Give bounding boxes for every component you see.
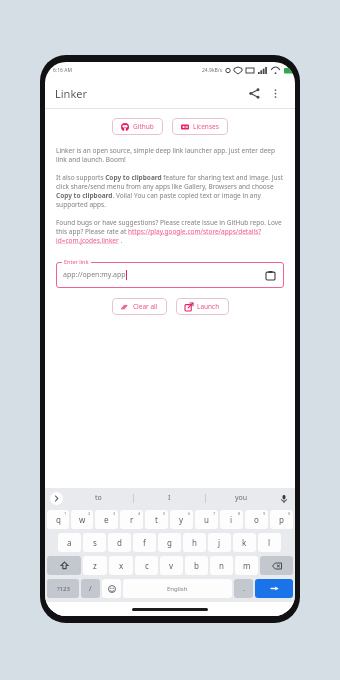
button[interactable]: Paste from clipboard <box>263 268 277 282</box>
staticText: ?123 <box>57 585 70 593</box>
staticText: q <box>56 514 61 525</box>
button[interactable]: d <box>108 533 131 552</box>
button[interactable]: Enter <box>255 579 293 598</box>
button[interactable]: Licenses <box>172 118 228 135</box>
staticText: app://open:my.app <box>63 270 126 280</box>
staticText: t <box>155 514 158 525</box>
button[interactable]: z <box>83 556 107 575</box>
staticText: e <box>104 514 109 525</box>
button[interactable]: e <box>95 510 118 529</box>
staticText: i <box>230 514 233 525</box>
button[interactable]: Expand toolbar <box>50 492 63 505</box>
button[interactable]: I <box>134 493 205 503</box>
button[interactable]: j <box>208 533 231 552</box>
staticText: f <box>143 537 146 548</box>
staticText: p <box>279 514 284 525</box>
button[interactable]: Emoji <box>102 579 121 598</box>
staticText: Launch <box>197 302 220 311</box>
button[interactable]: s <box>83 533 106 552</box>
staticText: j <box>218 537 221 548</box>
staticText: 9 <box>263 511 266 516</box>
button[interactable]: v <box>160 556 183 575</box>
staticText: y <box>179 514 184 525</box>
button[interactable]: m <box>235 556 258 575</box>
button[interactable]: y <box>170 510 193 529</box>
staticText: 6 <box>188 511 191 516</box>
staticText: r <box>130 514 134 525</box>
button[interactable]: l <box>258 533 281 552</box>
staticText: I <box>168 493 171 503</box>
button[interactable]: to <box>63 493 133 503</box>
staticText: 4 <box>138 511 141 516</box>
button[interactable]: More options <box>265 83 285 103</box>
staticText: Linker <box>55 86 88 101</box>
staticText: z <box>93 560 97 571</box>
button[interactable]: Slash <box>81 579 100 598</box>
staticText: w <box>79 514 86 525</box>
button[interactable]: k <box>233 533 256 552</box>
button[interactable]: Period <box>234 579 253 598</box>
staticText: o <box>254 514 259 525</box>
staticText: 6:16 AM <box>53 67 72 74</box>
staticText: 7 <box>213 511 216 516</box>
staticText: Github <box>133 122 154 131</box>
staticText: English <box>167 585 188 593</box>
staticText: Linker is an open source, simple deep li… <box>56 146 284 164</box>
button[interactable]: p <box>270 510 293 529</box>
button[interactable]: Shift <box>47 556 81 575</box>
button[interactable]: o <box>245 510 268 529</box>
staticText: x <box>119 560 124 571</box>
button[interactable]: h <box>183 533 206 552</box>
staticText: m <box>243 560 251 571</box>
button[interactable]: Symbols <box>47 579 79 598</box>
button[interactable]: a <box>58 533 81 552</box>
staticText: Clear all <box>133 302 158 311</box>
staticText: h <box>192 537 197 548</box>
button[interactable]: r <box>120 510 143 529</box>
staticText: 5 <box>163 511 166 516</box>
button[interactable]: Github <box>112 118 163 135</box>
staticText: c <box>145 560 149 571</box>
staticText: It also supports Copy to clipboard featu… <box>56 173 284 209</box>
staticText: u <box>204 514 209 525</box>
staticText: s <box>93 537 97 548</box>
staticText: l <box>268 537 271 548</box>
button[interactable]: g <box>158 533 181 552</box>
staticText: Licenses <box>193 122 219 131</box>
staticText: to <box>95 493 102 503</box>
button[interactable]: Voice input <box>277 492 290 505</box>
button[interactable]: Launch <box>176 298 229 315</box>
staticText: k <box>242 537 247 548</box>
staticText: 0 <box>288 511 291 516</box>
button[interactable]: you <box>206 493 277 503</box>
button[interactable]: u <box>195 510 218 529</box>
button[interactable]: q <box>47 510 69 529</box>
button[interactable]: app://open:my.app <box>56 262 284 288</box>
staticText: d <box>117 537 122 548</box>
button[interactable]: Share <box>243 82 265 104</box>
staticText: 2 <box>88 511 91 516</box>
button[interactable]: c <box>135 556 158 575</box>
staticText: / <box>89 584 92 594</box>
button[interactable]: w <box>71 510 93 529</box>
staticText: g <box>167 537 172 548</box>
button[interactable]: i <box>220 510 243 529</box>
staticText: 1 <box>64 511 67 516</box>
staticText: Enter link <box>64 258 89 265</box>
button[interactable]: b <box>185 556 208 575</box>
staticText: a <box>67 537 72 548</box>
button[interactable]: x <box>109 556 133 575</box>
staticText: . <box>243 584 245 594</box>
button[interactable]: f <box>133 533 156 552</box>
button[interactable]: n <box>210 556 233 575</box>
staticText: n <box>219 560 224 571</box>
button[interactable]: Clear all <box>112 298 167 315</box>
staticText: b <box>194 560 199 571</box>
staticText: 3 <box>113 511 116 516</box>
button[interactable]: English <box>123 579 232 598</box>
staticText: 24.9kB/s <box>202 67 223 74</box>
button[interactable]: Backspace <box>260 556 293 575</box>
staticText: v <box>169 560 174 571</box>
staticText: Found bugs or have suggestions? Please c… <box>56 218 284 245</box>
button[interactable]: t <box>145 510 168 529</box>
